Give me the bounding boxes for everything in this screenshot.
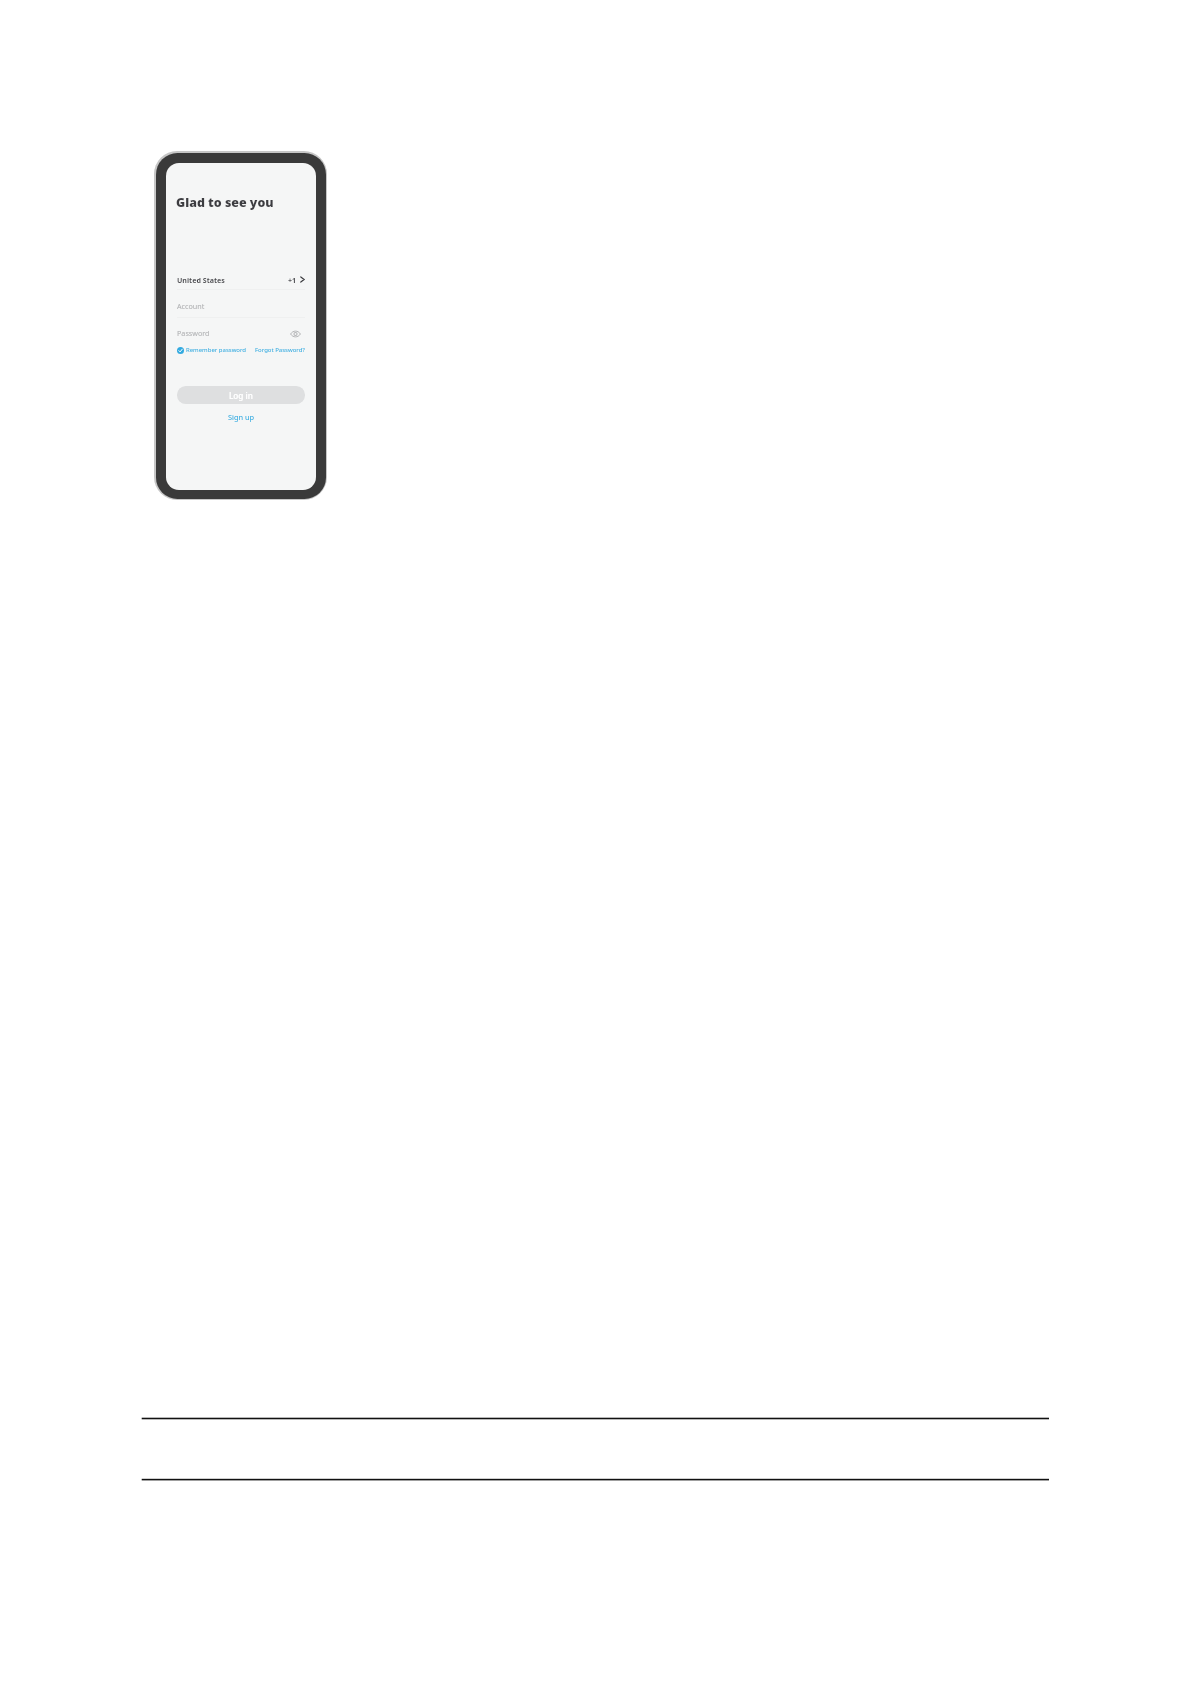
staticText: Glad to see you (176, 194, 274, 211)
staticText: Remember password (186, 346, 247, 354)
button[interactable]: Forgot Password? (255, 346, 305, 354)
staticText: Password (177, 328, 210, 338)
staticText: United States (177, 275, 225, 285)
button[interactable]: Remember password (177, 346, 247, 354)
staticText: Account (177, 301, 205, 311)
staticText: Sign up (228, 412, 255, 422)
button[interactable]: United States (177, 271, 305, 288)
button[interactable]: Sign up (228, 412, 255, 422)
staticText: +1 (288, 275, 297, 285)
staticText: Log in (229, 390, 253, 401)
button[interactable]: Show password (288, 328, 302, 340)
button[interactable]: Log in (177, 386, 305, 404)
staticText: Forgot Password? (255, 346, 305, 354)
